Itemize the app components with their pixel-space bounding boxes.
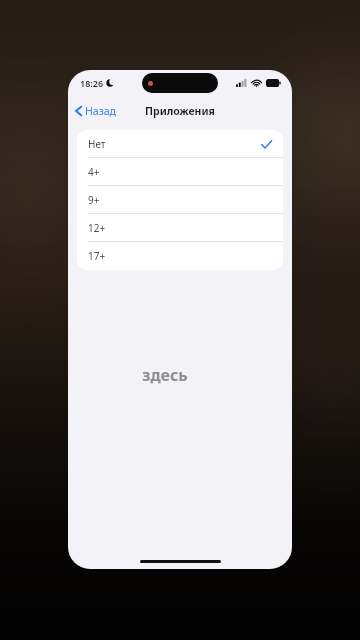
button[interactable]: 17+ — [77, 242, 283, 270]
button[interactable]: 4+ — [77, 158, 283, 186]
button[interactable]: 12+ — [77, 214, 283, 242]
staticText: здесь — [141, 365, 187, 387]
button[interactable]: 9+ — [77, 186, 283, 214]
staticText: здесь — [142, 364, 188, 386]
staticText: 4+ — [88, 165, 100, 179]
staticText: 17+ — [88, 249, 106, 263]
staticText: Приложения — [145, 104, 215, 118]
staticText: 12+ — [88, 221, 106, 235]
staticText: здесь — [143, 364, 189, 386]
staticText: здесь — [142, 363, 188, 385]
button[interactable]: Назад — [68, 98, 122, 124]
staticText: 9+ — [88, 193, 100, 207]
staticText: здесь — [143, 363, 189, 385]
staticText: Назад — [85, 104, 116, 118]
staticText: здесь — [143, 365, 189, 387]
staticText: здесь — [142, 365, 188, 387]
staticText: Нет — [88, 137, 106, 151]
staticText: здесь — [141, 363, 187, 385]
button[interactable]: Нет — [77, 130, 283, 158]
staticText: здесь — [141, 364, 187, 386]
staticText: 18:26 — [80, 77, 104, 89]
